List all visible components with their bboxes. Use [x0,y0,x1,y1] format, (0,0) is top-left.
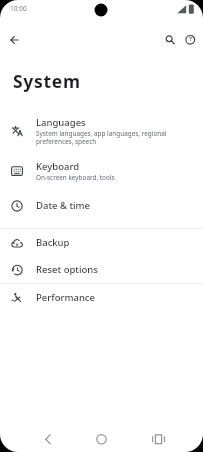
staticText: Reset options [36,263,98,276]
button[interactable]: Reset options [0,256,203,283]
button[interactable] [4,29,26,51]
button[interactable] [159,29,180,50]
staticText: Date & time [36,199,91,212]
staticText: System [13,69,81,93]
staticText: Keyboard [36,160,80,173]
staticText: ? [189,35,192,43]
button[interactable]: Performance [0,284,203,311]
staticText: 10:00 [10,4,27,13]
button[interactable]: Languages [0,114,203,147]
staticText: Performance [36,291,95,304]
button[interactable] [146,427,170,451]
staticText: Languages [36,116,86,129]
button[interactable]: Keyboard [0,157,203,185]
staticText: Backup [36,236,70,249]
button[interactable]: Backup [0,229,203,256]
staticText: On-screen keyboard, tools [36,173,115,182]
button[interactable]: Date & time [0,192,203,219]
staticText: System languages, app languages, regiona… [36,129,167,146]
button[interactable]: ? [180,29,201,50]
button[interactable] [89,427,113,451]
button[interactable] [36,427,60,451]
